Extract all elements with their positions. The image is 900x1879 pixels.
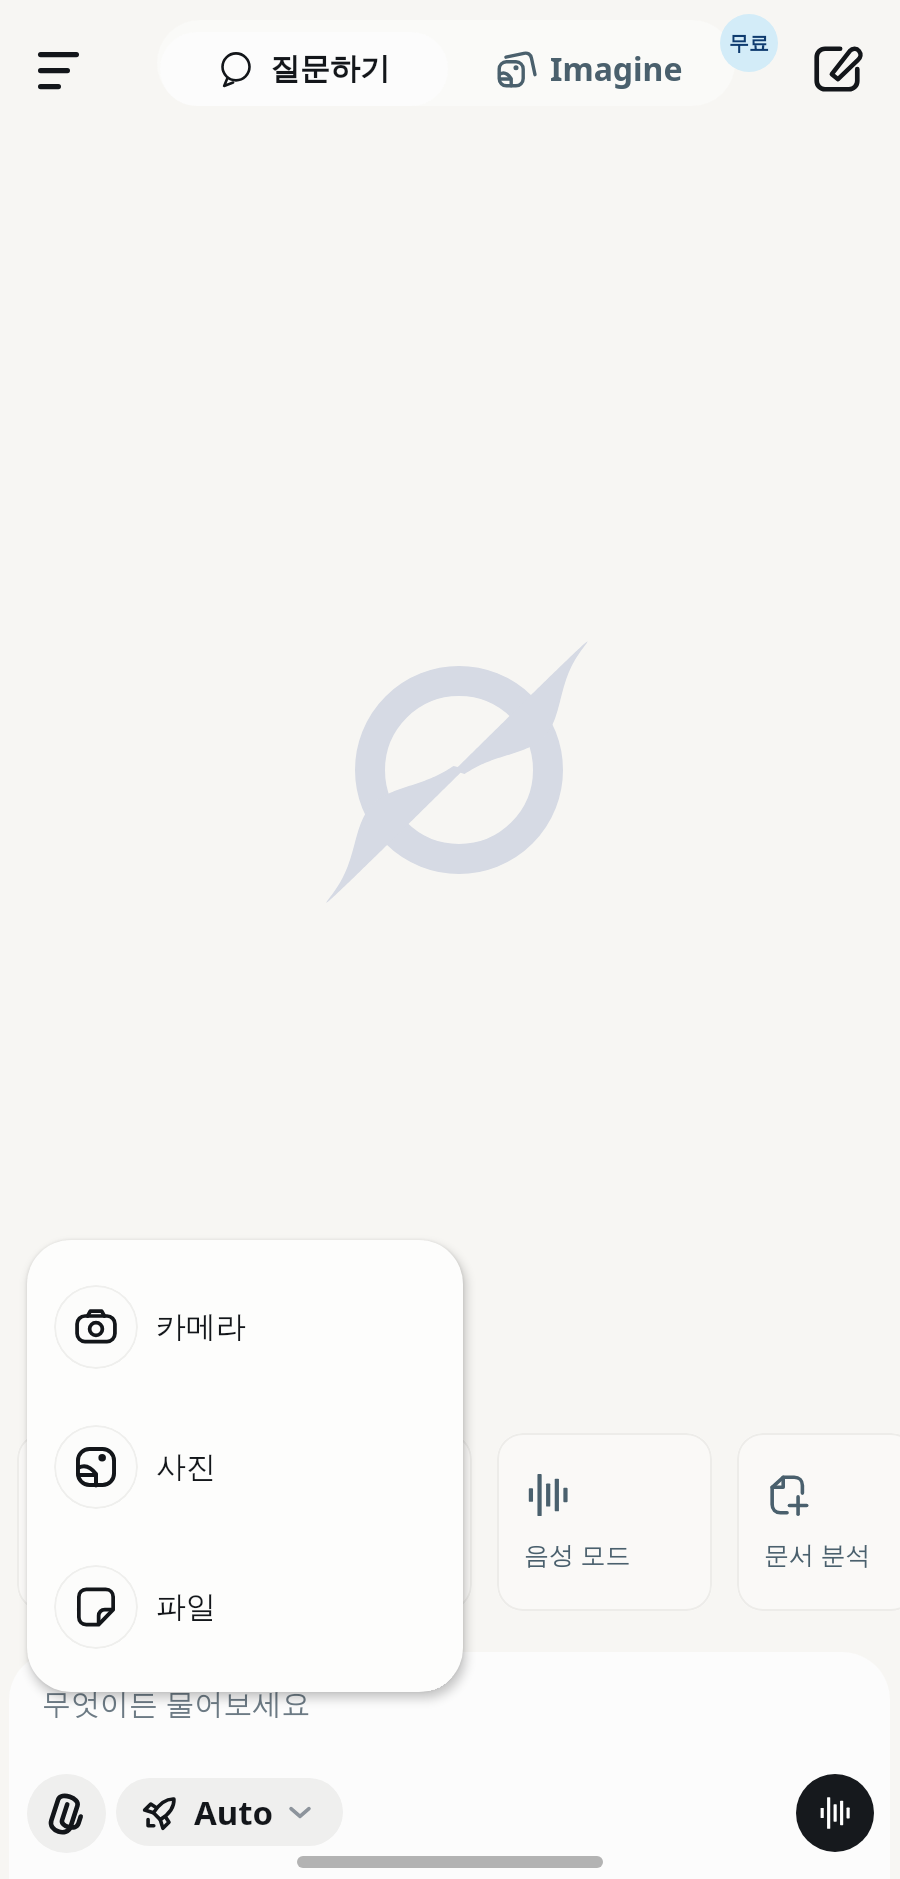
button[interactable]: 카메라 [27, 1285, 463, 1369]
button[interactable]: Menu [20, 26, 98, 104]
button[interactable]: Voice mode [796, 1774, 874, 1852]
button[interactable]: 음성 모드 [497, 1433, 712, 1611]
staticText: 음성 모드 [524, 1537, 631, 1571]
button[interactable]: 파일 [27, 1565, 463, 1649]
button[interactable]: New thread [800, 32, 874, 106]
staticText: 파일 [156, 1588, 216, 1626]
button[interactable]: Auto [116, 1778, 343, 1846]
button[interactable]: 추천 질문 [257, 1433, 472, 1611]
staticText: Imagine [550, 47, 683, 91]
staticText: 문서 분석 [764, 1537, 871, 1571]
button[interactable]: 문서 분석 [737, 1433, 900, 1611]
staticText: Auto [194, 1790, 274, 1835]
button[interactable]: Imagine [460, 32, 732, 106]
button[interactable]: 질문하기 [160, 32, 448, 106]
button[interactable]: 이미지 생성 [17, 1433, 232, 1611]
staticText: 질문하기 [270, 50, 390, 88]
button[interactable]: Attach [27, 1774, 106, 1853]
button[interactable]: 사진 [27, 1425, 463, 1509]
staticText: 무료 [729, 31, 769, 56]
staticText: 카메라 [156, 1308, 246, 1346]
staticText: 사진 [156, 1448, 216, 1486]
staticText: 무엇이든 물어보세요 [42, 1683, 311, 1723]
